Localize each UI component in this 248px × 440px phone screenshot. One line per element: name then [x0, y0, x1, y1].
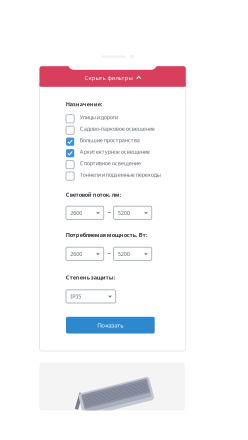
staticText: Скрыть фильтры	[85, 74, 133, 82]
staticText: Световой поток, лм:	[66, 191, 122, 198]
staticText: 2600	[70, 209, 82, 217]
button[interactable]	[39, 66, 186, 87]
staticText: Улицы и дороги	[80, 113, 118, 121]
button[interactable]: 2600	[66, 206, 104, 219]
staticText: Архитектурное освещение	[80, 148, 150, 155]
staticText: 2600	[70, 250, 82, 258]
staticText: Назначение:	[66, 100, 103, 108]
staticText: 5200	[118, 250, 130, 258]
staticText: Спортивное освещение	[80, 159, 141, 167]
staticText: IP35	[70, 293, 81, 300]
staticText: Показать	[97, 321, 123, 329]
staticText: Степень защиты:	[66, 274, 116, 281]
button[interactable]: 5200	[113, 206, 152, 219]
staticText: Тоннели и подземные переходы	[80, 171, 161, 178]
staticText: 5200	[118, 209, 130, 217]
button[interactable]: 5200	[113, 247, 152, 260]
button[interactable]: IP35	[66, 290, 116, 303]
staticText: Большие пространства	[80, 136, 140, 144]
button[interactable]: 2600	[66, 247, 104, 260]
button[interactable]: Показать	[66, 317, 155, 333]
staticText: Потребляемая мощность, Вт:	[66, 231, 148, 239]
staticText: Садово-парковое освещение	[80, 125, 155, 132]
